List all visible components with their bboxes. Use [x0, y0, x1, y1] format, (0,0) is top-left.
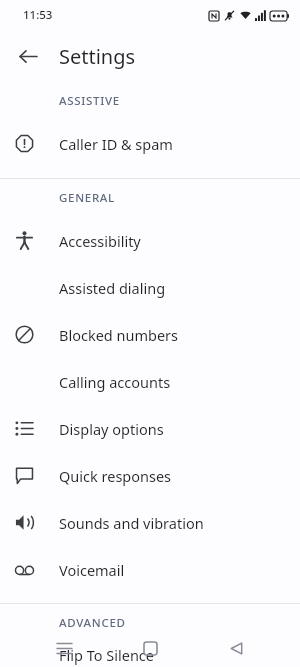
- button[interactable]: Menu: [42, 629, 86, 667]
- staticText: Blocked numbers: [59, 325, 179, 345]
- button[interactable]: Voicemail: [0, 546, 300, 593]
- button[interactable]: Caller ID & spam: [0, 120, 300, 167]
- staticText: 11:53: [23, 7, 53, 23]
- button[interactable]: Quick responses: [0, 452, 300, 499]
- staticText: Assisted dialing: [59, 278, 166, 298]
- button[interactable]: Display options: [0, 405, 300, 452]
- staticText: GENERAL: [59, 190, 115, 206]
- staticText: Quick responses: [59, 466, 172, 486]
- button[interactable]: Home: [128, 629, 172, 667]
- staticText: Voicemail: [59, 560, 125, 580]
- button[interactable]: Sounds and vibration: [0, 499, 300, 546]
- button[interactable]: Back: [214, 629, 258, 667]
- staticText: Flip To Silence: [59, 645, 155, 665]
- staticText: ASSISTIVE: [59, 93, 120, 109]
- button[interactable]: Flip To Silence: [0, 642, 300, 667]
- button[interactable]: Assisted dialing: [0, 264, 300, 311]
- staticText: Settings: [59, 43, 136, 70]
- button[interactable]: Accessibility: [0, 217, 300, 264]
- staticText: ADVANCED: [59, 615, 126, 631]
- staticText: Calling accounts: [59, 372, 171, 392]
- button[interactable]: Back: [8, 36, 48, 76]
- staticText: Display options: [59, 419, 164, 439]
- button[interactable]: Calling accounts: [0, 358, 300, 405]
- staticText: Sounds and vibration: [59, 513, 204, 533]
- staticText: Accessibility: [59, 231, 141, 251]
- staticText: Caller ID & spam: [59, 134, 173, 154]
- button[interactable]: Blocked numbers: [0, 311, 300, 358]
